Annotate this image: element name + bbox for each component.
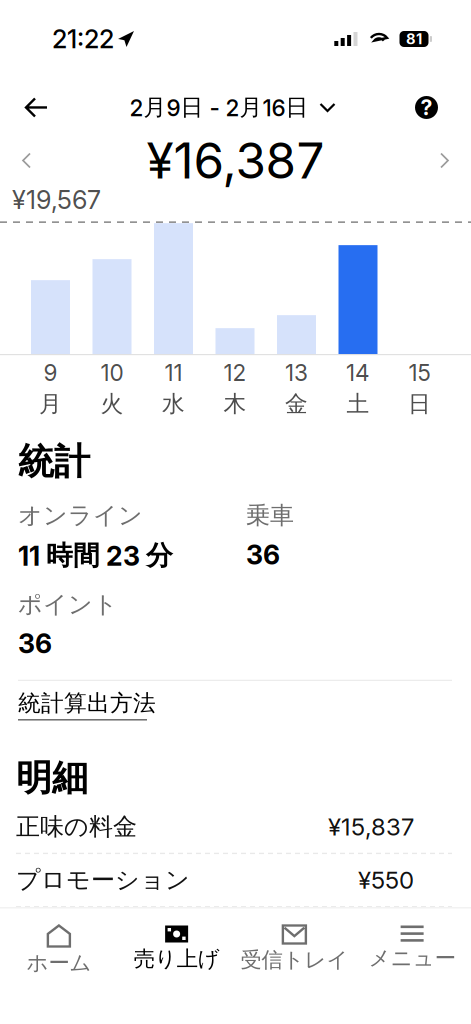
button[interactable]: 2月9日 - 2月16日 [129,83,334,132]
staticText: プロモーション [16,865,190,895]
staticText: ? [420,95,432,120]
staticText: 15 [408,359,430,386]
staticText: メニュー [369,945,456,972]
staticText: 11 時間 23 分 [18,539,173,572]
staticText: 受信トレイ [240,946,348,973]
staticText: 火 [100,390,123,418]
staticText: 81 [406,30,422,48]
staticText: 13 [285,359,308,386]
staticText: ¥19,567 [12,184,101,215]
staticText: 統計 [18,439,90,484]
staticText: 12 [223,359,246,386]
staticText: 10 [100,359,123,386]
button[interactable]: 受信トレイ [235,908,353,988]
staticText: ポイント [18,589,118,619]
button[interactable]: ホーム [0,908,118,988]
staticText: 21:22 [52,24,114,54]
staticText: 14 [346,359,370,386]
staticText: 36 [246,539,280,571]
button[interactable]: 前の週 [9,136,44,184]
staticText: 正味の料金 [16,812,137,842]
staticText: ホーム [26,949,91,976]
staticText: オンライン [18,500,143,531]
staticText: 乗車 [246,500,294,531]
staticText: 水 [162,390,185,418]
staticText: 明細 [16,755,88,801]
staticText: ¥550 [358,866,414,895]
button[interactable]: 統計算出方法 [18,681,156,720]
staticText: 月 [39,390,62,418]
staticText: ¥16,387 [146,131,324,190]
staticText: 木 [223,390,246,418]
staticText: 売り上げ [134,945,220,972]
staticText: 36 [18,627,52,660]
button[interactable]: 戻る [13,82,60,132]
button[interactable]: ヘルプ [404,85,449,130]
button[interactable]: 次の週 [427,136,462,184]
staticText: 土 [346,390,369,418]
staticText: 2月9日 - 2月16日 [129,93,308,122]
staticText: ¥15,837 [328,812,414,841]
staticText: 9 [43,359,57,386]
staticText: 11 [164,359,182,386]
staticText: 統計算出方法 [18,689,156,717]
button[interactable]: メニュー [353,908,471,988]
staticText: 日 [408,390,431,418]
button[interactable]: 売り上げ [118,908,236,988]
staticText: 金 [285,390,308,418]
